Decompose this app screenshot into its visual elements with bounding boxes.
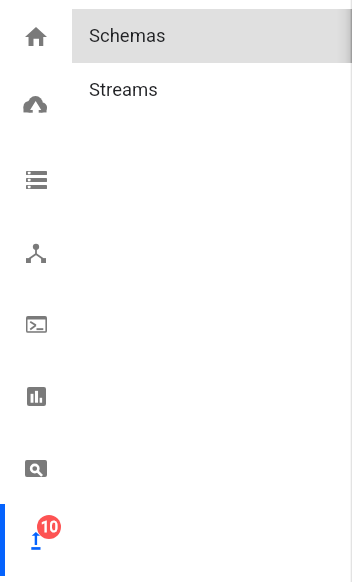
button[interactable]: Home [0, 0, 72, 72]
button[interactable]: Upload [0, 72, 72, 144]
staticText: Streams [89, 79, 158, 101]
staticText: Schemas [89, 25, 166, 47]
button[interactable]: Uploads, 10 pending [0, 504, 72, 576]
button[interactable]: Storage [0, 144, 72, 216]
button[interactable]: Search [0, 432, 72, 504]
button[interactable]: Streams [72, 63, 352, 117]
button[interactable]: Charts [0, 360, 72, 432]
button[interactable]: Schemas [0, 216, 72, 288]
staticText: 10 [41, 518, 58, 536]
button[interactable]: Console [0, 288, 72, 360]
button[interactable]: Schemas [72, 9, 352, 63]
